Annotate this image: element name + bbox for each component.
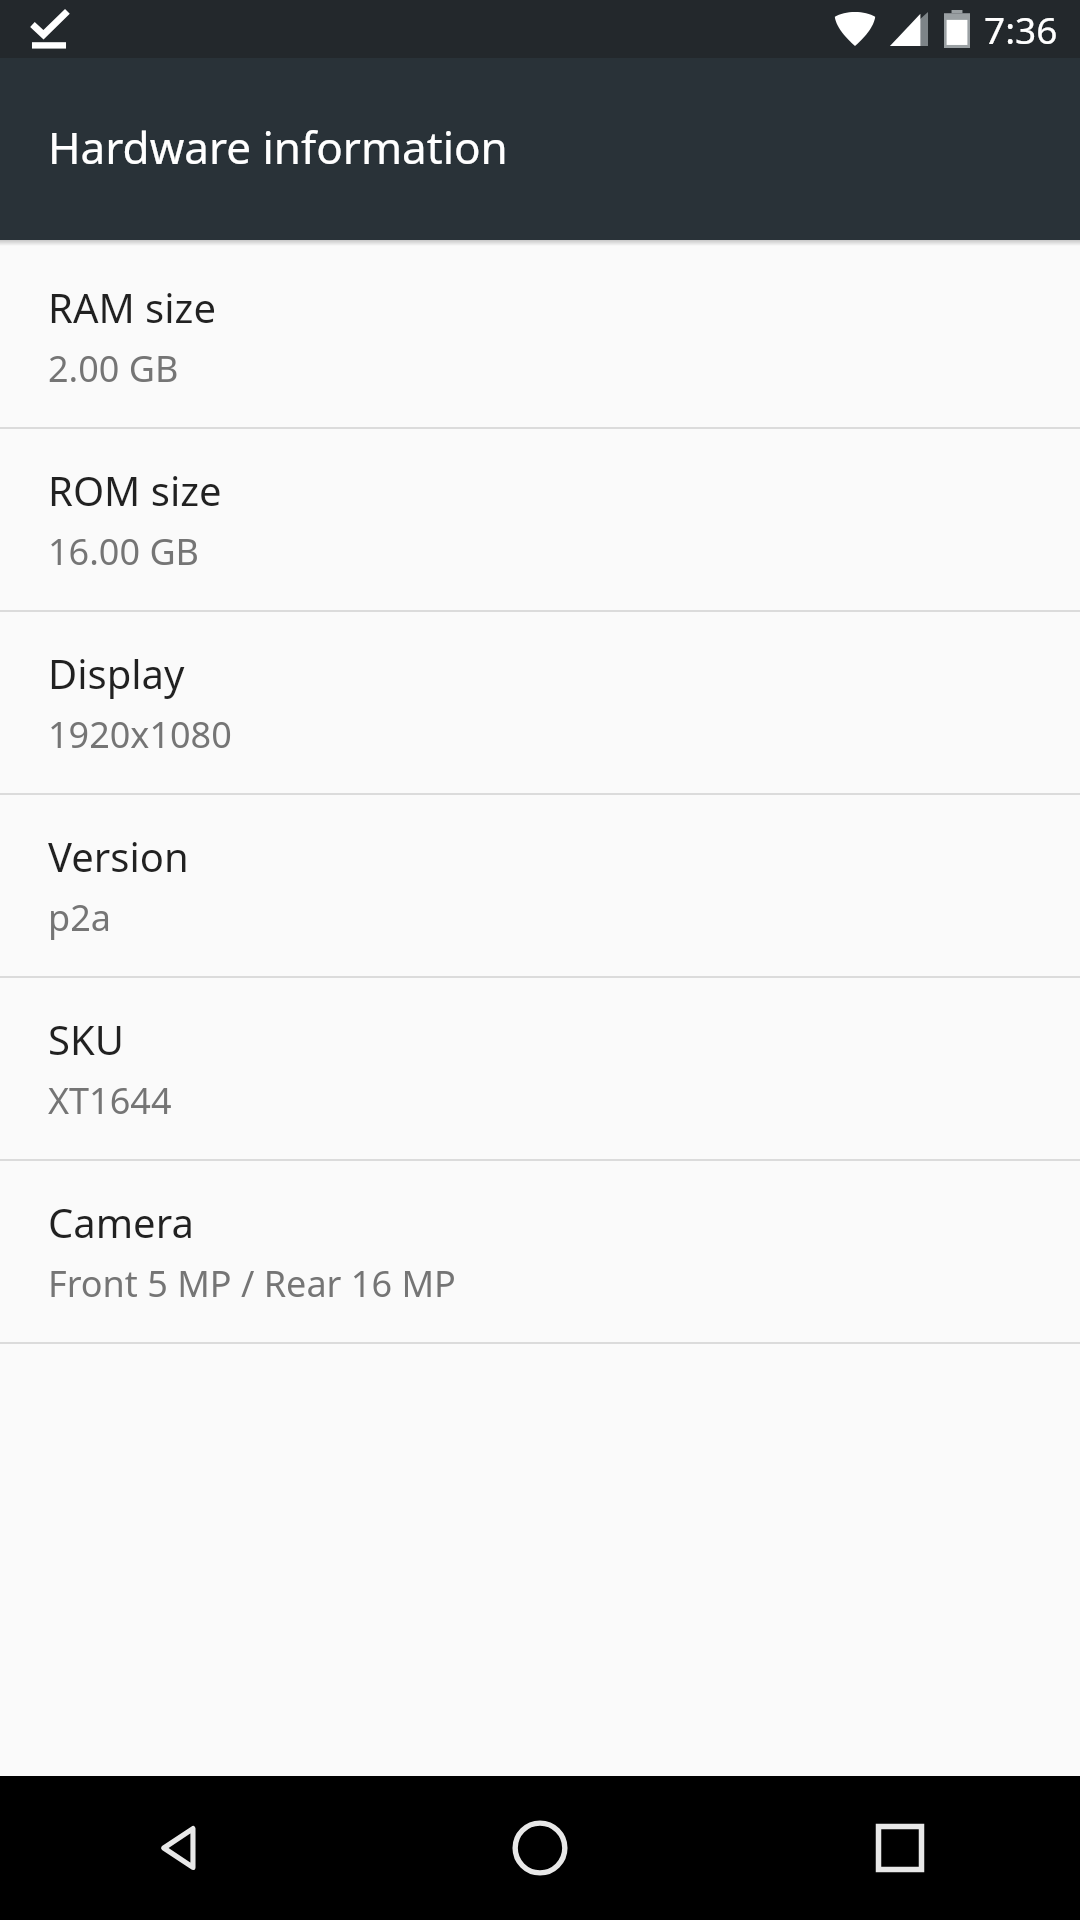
button[interactable]: Camera — [0, 1161, 1080, 1342]
other: Download complete — [26, 7, 72, 51]
staticText: 16.00 GB — [48, 527, 199, 576]
button[interactable]: Version — [0, 795, 1080, 976]
button[interactable]: RAM size — [0, 246, 1080, 427]
staticText: Version — [48, 829, 189, 883]
button[interactable]: Recent apps — [720, 1776, 1080, 1920]
staticText: XT1644 — [48, 1076, 172, 1125]
button[interactable]: ROM size — [0, 429, 1080, 610]
button[interactable]: Display — [0, 612, 1080, 793]
staticText: SKU — [48, 1012, 124, 1066]
staticText: p2a — [48, 893, 111, 942]
staticText: 2.00 GB — [48, 344, 179, 393]
button[interactable]: Home — [360, 1776, 720, 1920]
staticText: ROM size — [48, 463, 222, 517]
staticText: Hardware information — [48, 117, 508, 177]
staticText: RAM size — [48, 280, 216, 334]
staticText: Camera — [48, 1195, 194, 1249]
button[interactable]: Back — [0, 1776, 360, 1920]
staticText: Display — [48, 646, 185, 700]
staticText: Front 5 MP / Rear 16 MP — [48, 1259, 456, 1308]
button[interactable]: SKU — [0, 978, 1080, 1159]
staticText: 1920x1080 — [48, 710, 232, 759]
staticText: 7:36 — [984, 4, 1058, 54]
